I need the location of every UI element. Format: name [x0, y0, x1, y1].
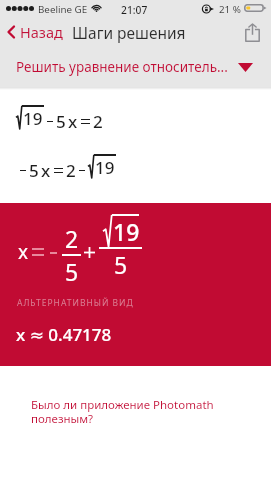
staticText: Было ли приложение Photomath полезным? [31, 397, 214, 426]
staticText: 2 [65, 223, 79, 254]
staticText: 21 % [219, 3, 241, 16]
button[interactable]: Решить уравнение относитель... [0, 47, 271, 87]
staticText: АЛЬТЕРНАТИВНЫЙ ВИД [17, 297, 134, 309]
staticText: 21:07 [121, 3, 148, 17]
staticText: x [41, 159, 51, 182]
button[interactable]: Назад [4, 19, 66, 45]
staticText: 19 [113, 216, 140, 247]
staticText: x [18, 239, 29, 265]
staticText: 2 [93, 110, 103, 133]
staticText: 19 [95, 156, 115, 179]
staticText: 5 [114, 249, 128, 280]
staticText: Beeline GE [38, 3, 88, 16]
staticText: x [68, 110, 78, 133]
staticText: 5 [56, 110, 66, 133]
staticText: Назад [20, 22, 63, 42]
staticText: Шаги решения [72, 22, 186, 43]
staticText: 5 [29, 159, 39, 182]
staticText: 5 [65, 256, 79, 287]
button[interactable]: Share [240, 20, 264, 44]
staticText: x ≈ 0.47178 [16, 323, 112, 346]
staticText: Решить уравнение относитель... [16, 58, 228, 76]
staticText: 2 [66, 159, 76, 182]
staticText: 19 [23, 107, 43, 130]
